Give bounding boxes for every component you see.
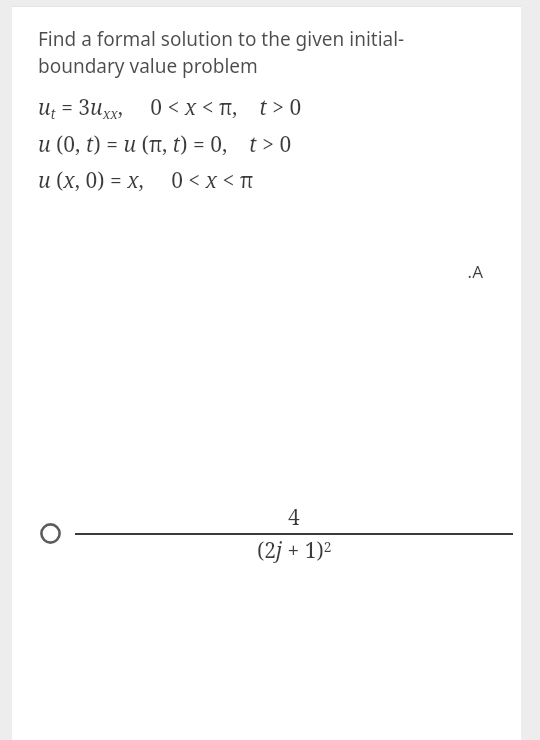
- staticText: .A: [12, 260, 483, 283]
- staticText: (2j + 1)2: [257, 536, 332, 565]
- staticText: ut = 3uxx, 0 < x < π, t > 0: [38, 93, 302, 123]
- staticText: Find a formal solution to the given init…: [38, 26, 405, 79]
- staticText: u (x, 0) = x, 0 < x < π: [38, 166, 254, 195]
- button[interactable]: Select answer A: [12, 327, 521, 740]
- staticText: u (0, t) = u (π, t) = 0, t > 0: [38, 130, 292, 159]
- staticText: 4: [288, 503, 300, 532]
